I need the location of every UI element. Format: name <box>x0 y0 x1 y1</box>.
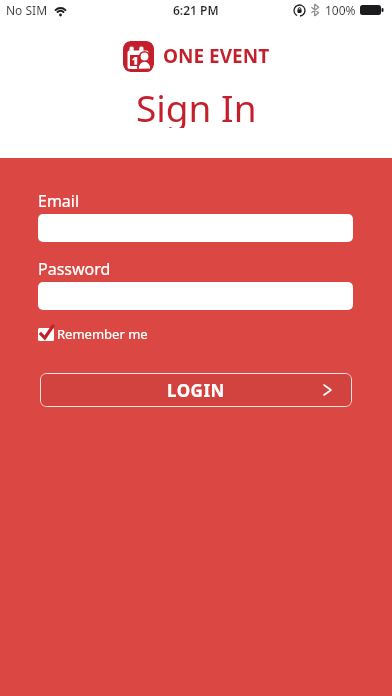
staticText: Remember me <box>57 325 148 340</box>
staticText: ONE EVENT <box>163 43 270 69</box>
staticText: Sign In <box>136 82 257 128</box>
button[interactable] <box>38 282 353 310</box>
staticText: Email <box>38 190 80 212</box>
staticText: LOGIN <box>167 379 225 402</box>
staticText: Password <box>38 258 111 280</box>
staticText: 6:21 PM <box>173 2 219 18</box>
staticText: No SIM <box>6 2 48 18</box>
button[interactable] <box>38 214 353 242</box>
button[interactable]: Remember me <box>38 325 148 340</box>
button[interactable]: LOGIN <box>40 373 352 407</box>
staticText: 100% <box>325 2 356 18</box>
